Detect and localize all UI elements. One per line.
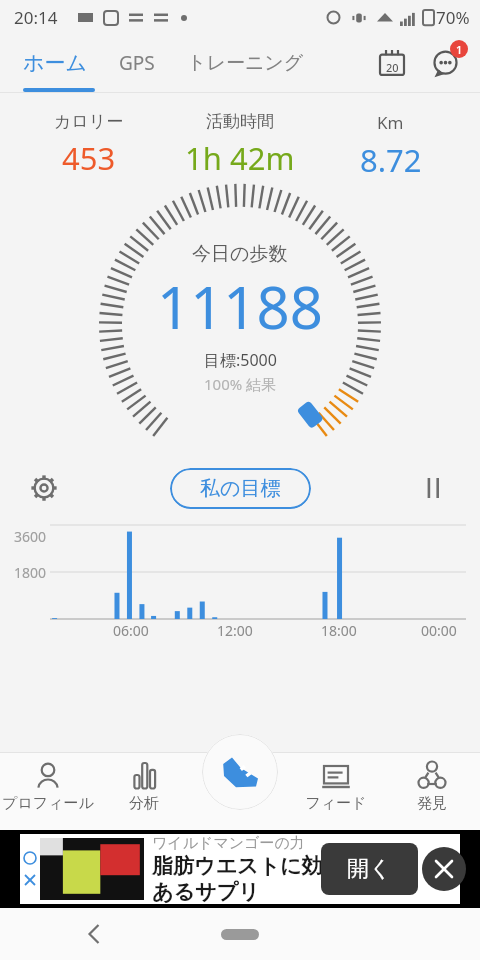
button[interactable]: 発見	[384, 752, 480, 830]
staticText: カロリー	[54, 111, 124, 132]
staticText: 1800	[14, 563, 47, 582]
button[interactable]: Calendar	[370, 41, 414, 85]
staticText: 8.72	[360, 139, 422, 181]
staticText: あるサプリ	[152, 879, 260, 904]
button[interactable]: プロフィール	[0, 752, 96, 830]
button[interactable]: Settings	[24, 468, 64, 508]
staticText: 70%	[436, 6, 470, 29]
staticText: 今日の歩数	[192, 242, 288, 266]
staticText: 目標:5000	[204, 349, 277, 371]
button[interactable]: GPS	[114, 42, 160, 84]
button[interactable]: ホーム	[18, 42, 92, 84]
button[interactable]: Steps	[192, 752, 288, 830]
staticText: 1h 42m	[185, 137, 295, 179]
button[interactable]: Home	[221, 929, 259, 940]
staticText: 発見	[417, 794, 447, 813]
button[interactable]: 分析	[96, 752, 192, 830]
staticText: 20:14	[14, 6, 58, 29]
staticText: 3600	[14, 527, 47, 546]
staticText: ワイルドマンゴーの力	[152, 834, 305, 853]
staticText: GPS	[119, 50, 155, 76]
button[interactable]: 活動時間	[164, 111, 315, 179]
staticText: Km	[377, 111, 404, 134]
staticText: 開く	[347, 855, 392, 883]
button[interactable]: Pause	[414, 468, 454, 508]
staticText: 453	[62, 137, 116, 179]
button[interactable]: Back	[74, 914, 114, 954]
staticText: 脂肪ウエストに効果の	[152, 853, 365, 879]
staticText: 1	[456, 42, 463, 57]
button[interactable]: フィード	[288, 752, 384, 830]
staticText: 私の目標	[200, 476, 281, 501]
staticText: フィード	[305, 794, 367, 813]
staticText: 18:00	[321, 621, 357, 640]
staticText: 00:00	[421, 621, 457, 640]
staticText: 12:00	[217, 621, 253, 640]
staticText: 活動時間	[206, 111, 274, 132]
button[interactable]: カロリー	[14, 111, 164, 179]
staticText: プロフィール	[2, 794, 94, 813]
button[interactable]: トレーニング	[182, 43, 309, 83]
button[interactable]: ワイルドマンゴーの力	[20, 834, 460, 904]
button[interactable]: Km	[315, 111, 466, 181]
staticText: ホーム	[23, 50, 87, 76]
staticText: 100% 結果	[204, 374, 277, 394]
staticText: 06:00	[113, 621, 149, 640]
button[interactable]: 私の目標	[170, 468, 311, 509]
button[interactable]: Close ad	[422, 847, 466, 891]
staticText: 20	[386, 60, 399, 75]
staticText: 分析	[129, 794, 159, 813]
staticText: 11188	[157, 267, 323, 346]
button[interactable]: 開く	[321, 843, 418, 895]
staticText: トレーニング	[187, 51, 304, 75]
button[interactable]: Messages	[422, 40, 468, 86]
